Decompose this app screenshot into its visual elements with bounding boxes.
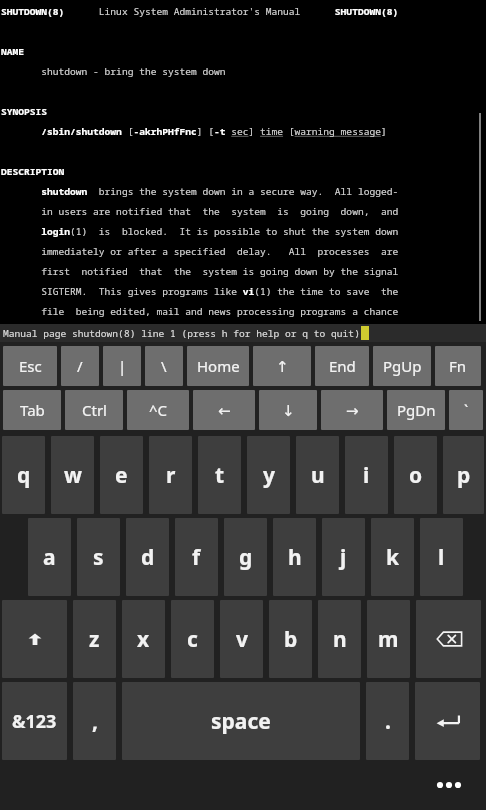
button[interactable]: k xyxy=(371,518,414,596)
button[interactable]: v xyxy=(220,600,263,678)
staticText: DESCRIPTION xyxy=(1,165,65,178)
button[interactable]: . xyxy=(366,682,409,760)
button[interactable]: o xyxy=(394,436,437,514)
staticText: o xyxy=(409,461,423,490)
staticText: ^C xyxy=(149,400,168,420)
staticText: x xyxy=(137,625,150,654)
button[interactable]: Backspace xyxy=(416,600,481,678)
staticText: p xyxy=(457,461,471,490)
staticText: first notified that the system is going … xyxy=(1,265,399,278)
staticText: d xyxy=(141,543,155,572)
staticText: Home xyxy=(197,356,240,376)
button[interactable]: y xyxy=(247,436,290,514)
button[interactable]: PgDn xyxy=(387,390,445,430)
staticText: c xyxy=(187,625,198,654)
staticText: space xyxy=(211,707,271,736)
staticText: SYNOPSIS xyxy=(1,105,48,118)
button[interactable]: a xyxy=(28,518,71,596)
staticText: l xyxy=(438,543,445,572)
staticText: g xyxy=(239,543,253,572)
staticText: | xyxy=(118,356,127,376)
button[interactable]: Fn xyxy=(435,346,481,386)
button[interactable]: e xyxy=(100,436,143,514)
button[interactable]: u xyxy=(296,436,339,514)
button[interactable]: ↑ xyxy=(253,346,311,386)
button[interactable]: j xyxy=(322,518,365,596)
button[interactable]: Tab xyxy=(3,390,61,430)
button[interactable]: ← xyxy=(193,390,255,430)
staticText: Fn xyxy=(449,356,467,376)
staticText: f xyxy=(192,543,201,572)
button[interactable]: z xyxy=(73,600,116,678)
staticText: shutdown brings the system down in a sec… xyxy=(1,185,399,198)
button[interactable]: More options xyxy=(426,770,472,800)
staticText: , xyxy=(92,707,98,736)
staticText: r xyxy=(166,461,176,490)
staticText: in users are notified that the system is… xyxy=(1,205,399,218)
button[interactable]: | xyxy=(103,346,141,386)
staticText: a xyxy=(43,543,56,572)
button[interactable]: Home xyxy=(187,346,249,386)
button[interactable]: / xyxy=(61,346,99,386)
button[interactable]: End xyxy=(315,346,369,386)
staticText: shutdown - bring the system down xyxy=(1,65,226,78)
button[interactable]: r xyxy=(149,436,192,514)
staticText: v xyxy=(236,625,248,654)
button[interactable]: h xyxy=(273,518,316,596)
staticText: Ctrl xyxy=(82,400,107,420)
staticText: PgUp xyxy=(383,356,422,376)
button[interactable]: &123 xyxy=(2,682,67,760)
staticText: b xyxy=(284,625,298,654)
button[interactable]: s xyxy=(77,518,120,596)
button[interactable]: n xyxy=(318,600,361,678)
staticText: ← xyxy=(218,402,231,419)
staticText: y xyxy=(263,461,275,490)
staticText: Tab xyxy=(20,400,45,420)
staticText: j xyxy=(340,543,347,572)
staticText: m xyxy=(378,625,399,654)
button[interactable]: d xyxy=(126,518,169,596)
button[interactable]: p xyxy=(443,436,484,514)
staticText: SHUTDOWN(8) Linux System Administrator's… xyxy=(1,5,399,18)
button[interactable]: g xyxy=(224,518,267,596)
staticText: ` xyxy=(464,400,469,420)
staticText: n xyxy=(333,625,347,654)
button[interactable]: Esc xyxy=(3,346,57,386)
button[interactable]: x xyxy=(122,600,165,678)
button[interactable]: ↓ xyxy=(259,390,317,430)
staticText: \ xyxy=(161,356,167,376)
button[interactable]: → xyxy=(321,390,383,430)
button[interactable]: i xyxy=(345,436,388,514)
staticText: /sbin/shutdown [-akrhPHfFnc] [-t sec] ti… xyxy=(1,125,387,138)
button[interactable]: c xyxy=(171,600,214,678)
button[interactable]: f xyxy=(175,518,218,596)
staticText: ↓ xyxy=(282,402,295,419)
staticText: t xyxy=(215,461,225,490)
staticText: file being edited, mail and news process… xyxy=(1,305,399,318)
button[interactable]: w xyxy=(51,436,94,514)
staticText: . xyxy=(385,707,391,736)
staticText: ↑ xyxy=(276,358,289,375)
button[interactable]: Enter xyxy=(415,682,480,760)
staticText: w xyxy=(64,461,82,490)
button[interactable]: \ xyxy=(145,346,183,386)
button[interactable]: PgUp xyxy=(373,346,431,386)
button[interactable]: q xyxy=(2,436,45,514)
staticText: immediately or after a specified delay. … xyxy=(1,245,399,258)
button[interactable]: b xyxy=(269,600,312,678)
button[interactable]: l xyxy=(420,518,463,596)
staticText: u xyxy=(311,461,325,490)
staticText: z xyxy=(89,625,100,654)
button[interactable]: ^C xyxy=(127,390,189,430)
button[interactable]: Shift xyxy=(2,600,67,678)
staticText: → xyxy=(346,402,359,419)
button[interactable]: m xyxy=(367,600,410,678)
button[interactable]: Ctrl xyxy=(65,390,123,430)
button[interactable]: t xyxy=(198,436,241,514)
staticText: e xyxy=(115,461,128,490)
button[interactable]: space xyxy=(122,682,360,760)
staticText: q xyxy=(17,461,31,490)
button[interactable]: ` xyxy=(449,390,483,430)
button[interactable]: , xyxy=(73,682,116,760)
